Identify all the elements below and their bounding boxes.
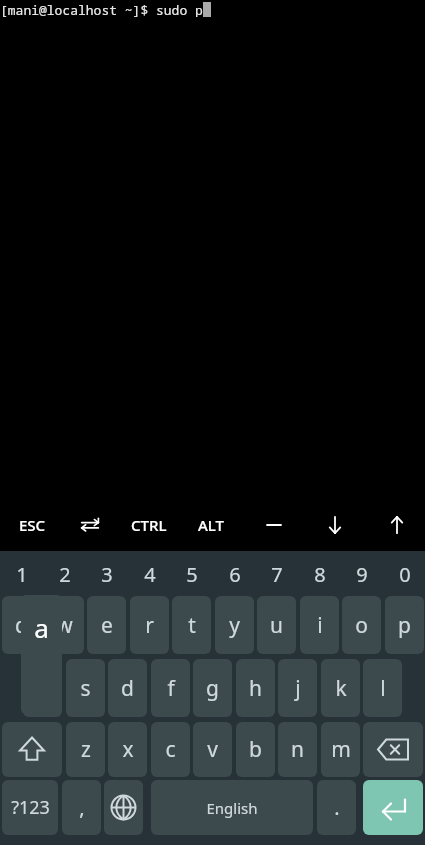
button[interactable]: ?123 xyxy=(2,780,58,835)
staticText: 2 xyxy=(59,561,71,588)
staticText: u xyxy=(270,611,283,640)
staticText: ESC xyxy=(19,515,46,535)
button[interactable]: o xyxy=(342,596,381,654)
button[interactable]: 9 xyxy=(340,555,383,593)
button[interactable]: g xyxy=(193,659,232,717)
button[interactable]: p xyxy=(385,596,424,654)
button[interactable]: 6 xyxy=(213,555,256,593)
button[interactable]: Change language xyxy=(104,780,143,835)
button[interactable]: w xyxy=(45,596,84,654)
button[interactable]: z xyxy=(66,722,105,777)
button[interactable]: l xyxy=(363,659,402,717)
staticText: ?123 xyxy=(11,795,50,820)
button[interactable]: 5 xyxy=(170,555,213,593)
staticText: m xyxy=(331,735,351,764)
staticText: k xyxy=(335,674,347,703)
button[interactable]: x xyxy=(108,722,147,777)
staticText: q xyxy=(15,611,28,640)
button[interactable]: CTRL xyxy=(120,499,178,551)
staticText: . xyxy=(334,794,340,821)
staticText: v xyxy=(207,735,218,764)
button[interactable]: 1 xyxy=(0,555,43,593)
button[interactable]: English xyxy=(151,780,313,835)
button[interactable]: 7 xyxy=(255,555,298,593)
button[interactable]: r xyxy=(130,596,169,654)
staticText: , xyxy=(79,794,85,821)
button[interactable]: q xyxy=(2,596,41,654)
button[interactable]: ALT xyxy=(186,499,236,551)
staticText: 0 xyxy=(399,561,411,588)
button[interactable]: m xyxy=(321,722,360,777)
staticText: r xyxy=(145,611,154,640)
staticText: x xyxy=(122,735,134,764)
button[interactable]: k xyxy=(321,659,360,717)
staticText: a xyxy=(34,610,49,645)
button[interactable]: Backspace xyxy=(363,722,423,777)
button[interactable]: c xyxy=(151,722,190,777)
button[interactable]: 4 xyxy=(128,555,171,593)
staticText: j xyxy=(295,674,301,703)
staticText: [mani@localhost ~]$ sudo p xyxy=(0,1,203,17)
button[interactable]: Enter xyxy=(363,780,423,835)
button[interactable]: 3 xyxy=(85,555,128,593)
staticText: 7 xyxy=(271,561,283,588)
staticText: h xyxy=(249,674,262,703)
staticText: z xyxy=(81,735,91,764)
button[interactable]: h xyxy=(236,659,275,717)
button[interactable]: i xyxy=(300,596,339,654)
button[interactable]: d xyxy=(108,659,147,717)
staticText: b xyxy=(249,735,262,764)
button[interactable]: j xyxy=(278,659,317,717)
button[interactable]: 2 xyxy=(43,555,86,593)
button[interactable]: Arrow up xyxy=(375,499,419,551)
staticText: y xyxy=(229,611,240,640)
staticText: w xyxy=(56,611,73,640)
staticText: f xyxy=(167,674,175,703)
staticText: 6 xyxy=(229,561,241,588)
button[interactable]: 8 xyxy=(298,555,341,593)
button[interactable]: 0 xyxy=(383,555,425,593)
button[interactable]: Minus xyxy=(252,499,296,551)
button[interactable]: b xyxy=(236,722,275,777)
button[interactable]: , xyxy=(62,780,101,835)
staticText: 3 xyxy=(101,561,113,588)
staticText: 1 xyxy=(16,561,28,588)
button[interactable]: v xyxy=(193,722,232,777)
staticText: ALT xyxy=(198,515,224,535)
staticText: p xyxy=(398,611,411,640)
staticText: g xyxy=(206,674,219,703)
staticText: d xyxy=(121,674,134,703)
button[interactable]: t xyxy=(172,596,211,654)
button[interactable]: . xyxy=(317,780,356,835)
staticText: l xyxy=(380,674,386,703)
button[interactable]: y xyxy=(215,596,254,654)
button[interactable]: e xyxy=(87,596,126,654)
staticText: CTRL xyxy=(131,515,167,535)
staticText: 5 xyxy=(186,561,198,588)
button[interactable]: Tab xyxy=(68,499,112,551)
staticText: e xyxy=(101,611,113,640)
staticText: s xyxy=(80,674,91,703)
button[interactable]: ESC xyxy=(8,499,56,551)
staticText: English xyxy=(206,798,258,818)
staticText: c xyxy=(165,735,176,764)
staticText: t xyxy=(188,611,196,640)
staticText: 8 xyxy=(314,561,326,588)
staticText: o xyxy=(355,611,368,640)
button[interactable]: s xyxy=(66,659,105,717)
button[interactable]: Shift xyxy=(2,722,62,777)
staticText: i xyxy=(317,611,323,640)
staticText: 4 xyxy=(144,561,156,588)
staticText: n xyxy=(291,735,304,764)
staticText: 9 xyxy=(356,561,368,588)
button[interactable]: n xyxy=(278,722,317,777)
button[interactable]: Arrow down xyxy=(313,499,357,551)
button[interactable]: f xyxy=(151,659,190,717)
button[interactable]: u xyxy=(257,596,296,654)
